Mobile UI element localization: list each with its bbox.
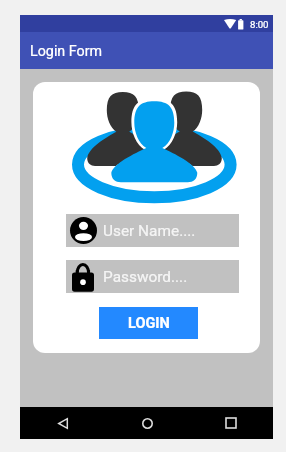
button[interactable]: Login Form	[20, 32, 273, 69]
staticText: User Name....	[103, 222, 196, 240]
button[interactable]: Home	[105, 407, 189, 439]
button[interactable]: Recent apps	[189, 407, 273, 439]
staticText: LOGIN	[128, 315, 170, 332]
button[interactable]: User Name....	[66, 214, 239, 247]
button[interactable]: LOGIN	[99, 307, 198, 339]
button[interactable]: Back	[20, 407, 105, 439]
staticText: Password....	[103, 268, 188, 286]
staticText: 8:00	[250, 19, 269, 30]
staticText: Login Form	[30, 43, 103, 60]
button[interactable]: Password....	[66, 260, 239, 293]
